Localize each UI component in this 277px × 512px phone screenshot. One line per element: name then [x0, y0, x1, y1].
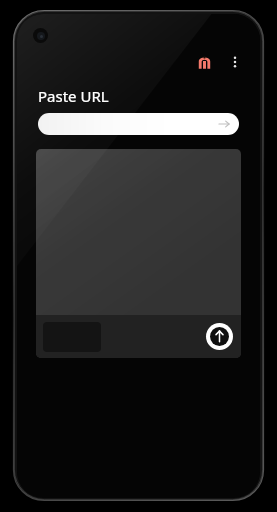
staticText: Paste URL: [38, 86, 109, 106]
button[interactable]: App logo: [191, 49, 217, 75]
button[interactable]: Paste URL input: [38, 113, 239, 135]
button[interactable]: Download: [206, 323, 233, 350]
button[interactable]: Format options: [36, 149, 241, 358]
button[interactable]: More options: [222, 49, 248, 75]
